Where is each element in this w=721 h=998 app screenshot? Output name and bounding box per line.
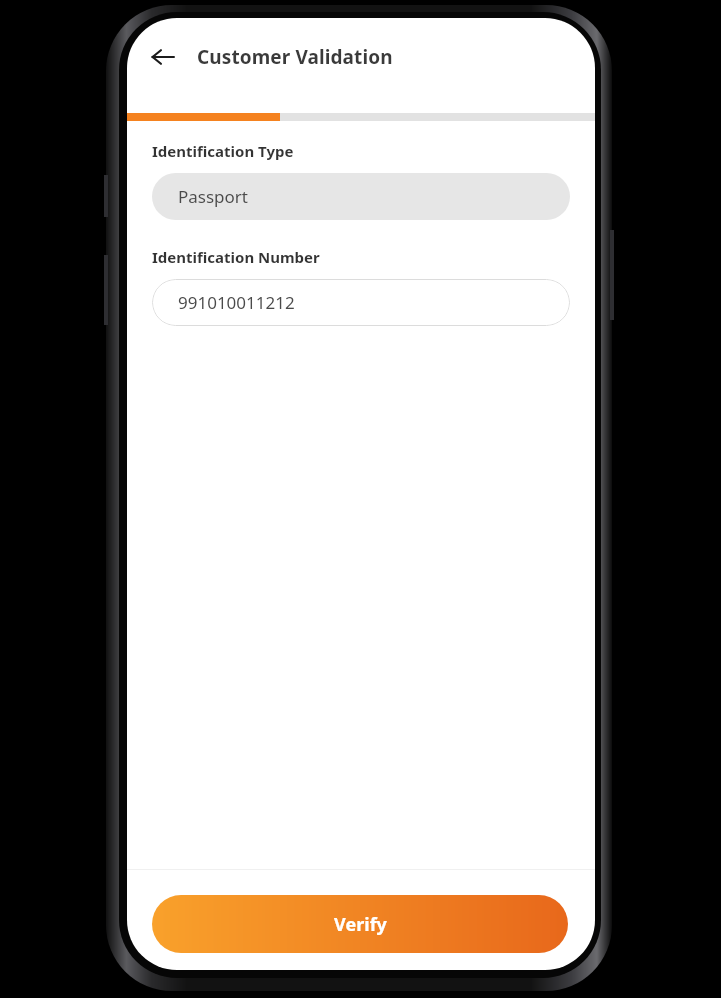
button[interactable]: 991010011212	[152, 279, 570, 326]
button[interactable]: Verify	[152, 895, 568, 953]
button[interactable]: Passport	[152, 173, 570, 220]
staticText: Customer Validation	[197, 44, 393, 70]
button[interactable]: Back	[140, 34, 186, 80]
staticText: Passport	[178, 185, 249, 208]
staticText: 991010011212	[178, 291, 295, 314]
staticText: Identification Number	[152, 247, 320, 267]
staticText: Verify	[334, 912, 387, 937]
staticText: Identification Type	[152, 141, 294, 161]
